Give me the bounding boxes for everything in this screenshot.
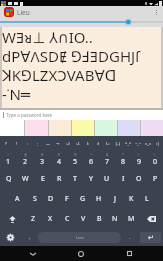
button[interactable]: ( bbox=[131, 150, 147, 169]
button[interactable]: :-( bbox=[73, 136, 83, 150]
staticText: . bbox=[129, 233, 131, 241]
staticText: D bbox=[48, 194, 54, 204]
button[interactable]: W bbox=[17, 169, 34, 189]
button[interactable]: C bbox=[59, 209, 75, 229]
button[interactable]: Text size slider bbox=[0, 18, 163, 27]
button[interactable]: & bbox=[99, 150, 115, 169]
staticText: B bbox=[97, 214, 102, 224]
staticText: H bbox=[96, 194, 102, 204]
button[interactable]: |-| bbox=[113, 136, 123, 150]
staticText: WƎᴚ⊥ ⅄∩IO.. bbox=[2, 27, 163, 46]
button[interactable]: X bbox=[42, 209, 59, 229]
button[interactable]: K bbox=[123, 189, 139, 209]
staticText: → bbox=[56, 141, 60, 146]
button[interactable]: O bbox=[131, 169, 147, 189]
button[interactable]: H bbox=[91, 189, 107, 209]
button[interactable]: ? bbox=[0, 136, 11, 150]
button[interactable]: ^_^ bbox=[123, 136, 133, 150]
staticText: , bbox=[29, 233, 31, 241]
staticText: ↵ bbox=[148, 234, 154, 242]
button[interactable]: A bbox=[9, 189, 26, 209]
button[interactable]: I bbox=[115, 169, 131, 189]
button[interactable]: G bbox=[75, 189, 91, 209]
staticText: V bbox=[81, 214, 86, 224]
button[interactable]: N bbox=[107, 209, 123, 229]
staticText: N bbox=[112, 214, 118, 224]
button[interactable]: L bbox=[139, 189, 155, 209]
button[interactable]: Enter bbox=[140, 232, 161, 243]
staticText: F bbox=[65, 194, 69, 204]
button[interactable]: S bbox=[26, 189, 43, 209]
staticText: @ bbox=[24, 152, 28, 157]
button[interactable]: ^ bbox=[83, 150, 99, 169]
button[interactable]: Home bbox=[67, 246, 95, 261]
staticText: 2 bbox=[23, 157, 28, 167]
staticText: -˙N═ bbox=[2, 84, 163, 103]
button[interactable]: ~_~ bbox=[133, 136, 143, 150]
button[interactable]: : bbox=[22, 136, 33, 150]
staticText: C bbox=[65, 214, 70, 224]
button[interactable]: =_= bbox=[143, 136, 153, 150]
button[interactable]: ; bbox=[33, 136, 43, 150]
button[interactable]: $ bbox=[51, 150, 67, 169]
staticText: T bbox=[73, 174, 77, 184]
button[interactable]: Back bbox=[19, 246, 47, 261]
button[interactable]: Space bbox=[38, 232, 121, 243]
button[interactable]: P bbox=[147, 169, 163, 189]
button[interactable]: D bbox=[43, 189, 59, 209]
button[interactable]: # bbox=[34, 150, 51, 169]
button[interactable]: :-) bbox=[63, 136, 73, 150]
button[interactable]: Z bbox=[25, 209, 42, 229]
button[interactable]: ) bbox=[147, 150, 163, 169]
button[interactable]: @ bbox=[17, 150, 34, 169]
staticText: 8 bbox=[121, 157, 126, 167]
button[interactable]: — bbox=[43, 136, 53, 150]
button[interactable]: * bbox=[115, 150, 131, 169]
staticText: Lieu bbox=[17, 8, 30, 17]
button[interactable]: B bbox=[91, 209, 107, 229]
staticText: X bbox=[48, 214, 53, 224]
staticText: :| bbox=[156, 141, 160, 146]
button[interactable]: Shift bbox=[0, 209, 25, 229]
staticText: 9 bbox=[137, 157, 142, 167]
button[interactable]: (: bbox=[83, 136, 93, 150]
button[interactable]: M bbox=[123, 209, 139, 229]
button[interactable]: ! bbox=[11, 136, 22, 150]
button[interactable]: T bbox=[67, 169, 83, 189]
button[interactable]: F bbox=[59, 189, 75, 209]
button[interactable]: . bbox=[121, 229, 138, 246]
staticText: W bbox=[22, 174, 29, 184]
button[interactable]: E bbox=[34, 169, 51, 189]
staticText: ꓘK⅁LZXƆVAB∀ꓷ bbox=[2, 65, 163, 84]
staticText: % bbox=[74, 152, 77, 157]
button[interactable]: (-: bbox=[103, 136, 113, 150]
button[interactable]: J bbox=[107, 189, 123, 209]
button[interactable]: R bbox=[51, 169, 67, 189]
button[interactable]: Y bbox=[83, 169, 99, 189]
button[interactable]: :) bbox=[93, 136, 103, 150]
button[interactable]: Backspace bbox=[139, 209, 163, 229]
button[interactable]: U bbox=[99, 169, 115, 189]
button[interactable]: V bbox=[75, 209, 91, 229]
staticText: K bbox=[129, 194, 134, 204]
button[interactable]: , bbox=[21, 229, 38, 246]
staticText: R bbox=[57, 174, 62, 184]
staticText: J bbox=[114, 194, 116, 204]
staticText: Y bbox=[89, 174, 93, 184]
button[interactable]: ~ bbox=[0, 150, 17, 169]
button[interactable]: → bbox=[53, 136, 63, 150]
button[interactable]: Recents bbox=[115, 246, 143, 261]
button[interactable]: :| bbox=[153, 136, 163, 150]
button[interactable]: Q bbox=[0, 169, 17, 189]
button[interactable]: More options bbox=[149, 6, 163, 18]
staticText: # bbox=[41, 152, 44, 157]
button[interactable]: Settings bbox=[0, 229, 21, 246]
button[interactable]: % bbox=[67, 150, 83, 169]
